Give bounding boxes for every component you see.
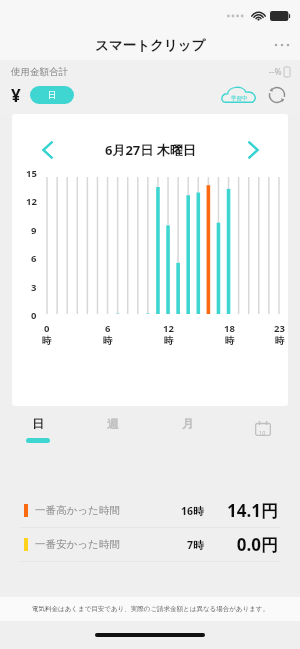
staticText: スマートクリップ [95,37,206,54]
staticText: 電気料金はあくまで目安であり、実際のご請求金額とは異なる場合があります。 [32,605,269,613]
staticText: 9 [31,224,37,237]
staticText: 時 [225,335,235,347]
staticText: 12 [163,322,174,335]
staticText: 0 [44,322,50,335]
staticText: 3 [31,281,37,294]
staticText: 時 [164,335,174,347]
staticText: 時 [103,335,113,347]
button[interactable]: 一番高かった時間 [0,494,300,527]
staticText: 時 [42,335,52,347]
staticText: 7時 [187,538,204,552]
staticText: 月 [182,416,194,431]
staticText: 14.1円 [227,499,278,522]
staticText: --% [269,66,282,78]
staticText: 学習中 [231,95,248,102]
button[interactable]: More options [264,30,300,60]
button[interactable]: Refresh [264,82,290,108]
button[interactable]: 一番安かった時間 [0,528,300,561]
staticText: 23 [274,322,285,335]
staticText: 16時 [181,504,204,518]
staticText: 10 [259,429,266,436]
button[interactable]: 日 [30,86,74,104]
button[interactable]: Next day [238,135,268,165]
staticText: 15 [26,167,37,180]
staticText: 使用金額合計 [11,66,68,78]
staticText: ¥ [11,84,21,107]
staticText: 一番安かった時間 [35,538,120,551]
staticText: 6 [105,322,111,335]
staticText: 日 [32,416,44,431]
staticText: 18 [224,322,235,335]
staticText: 6月27日 木曜日 [105,141,196,159]
button[interactable]: Calendar [225,406,300,452]
button[interactable]: 週 [75,406,150,452]
button[interactable]: 日 [0,406,75,452]
staticText: 一番高かった時間 [35,504,120,517]
staticText: 週 [107,416,119,431]
staticText: 12 [26,195,37,208]
staticText: 時 [275,335,285,347]
staticText: 日 [48,90,57,101]
button[interactable]: Learning status [220,83,258,107]
staticText: 0.0円 [236,533,278,556]
button[interactable]: Previous day [32,135,62,165]
staticText: 0 [31,309,37,322]
button[interactable]: 月 [150,406,225,452]
staticText: 6 [31,252,37,265]
